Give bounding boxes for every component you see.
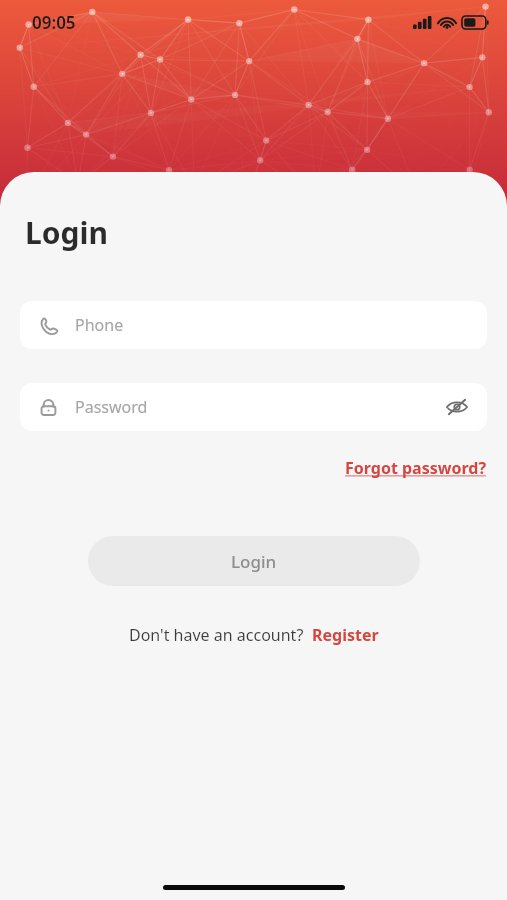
button[interactable]: Show password xyxy=(445,395,469,419)
staticText: Password xyxy=(75,396,148,418)
staticText: Phone xyxy=(75,314,124,336)
button[interactable]: Forgot password? xyxy=(345,453,507,483)
staticText: Don't have an account? xyxy=(129,624,304,646)
button[interactable]: Phone xyxy=(20,301,487,349)
button[interactable]: Login xyxy=(88,536,420,586)
staticText: Login xyxy=(25,212,108,253)
button[interactable]: Password xyxy=(20,383,487,431)
staticText: Login xyxy=(231,550,277,573)
button[interactable]: Register xyxy=(312,624,379,646)
staticText: 09:05 xyxy=(32,11,76,34)
